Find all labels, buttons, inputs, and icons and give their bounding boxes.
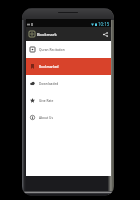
button[interactable]: Quran Recitation (26, 41, 111, 58)
button[interactable]: Give Rate (26, 92, 111, 109)
staticText: About Us (39, 116, 53, 120)
button[interactable]: Bookmarked (26, 58, 111, 75)
staticText: Give Rate (39, 99, 54, 103)
button[interactable]: Open navigation (29, 31, 35, 37)
staticText: Bookmark (37, 32, 57, 37)
staticText: Quran Recitation (39, 48, 65, 52)
staticText: Bookmarked (39, 65, 59, 69)
staticText: 10:15 (98, 21, 110, 27)
button[interactable]: About Us (26, 109, 111, 126)
staticText: Downloaded (39, 82, 59, 86)
button[interactable]: Share (102, 31, 109, 38)
button[interactable]: Downloaded (26, 75, 111, 92)
